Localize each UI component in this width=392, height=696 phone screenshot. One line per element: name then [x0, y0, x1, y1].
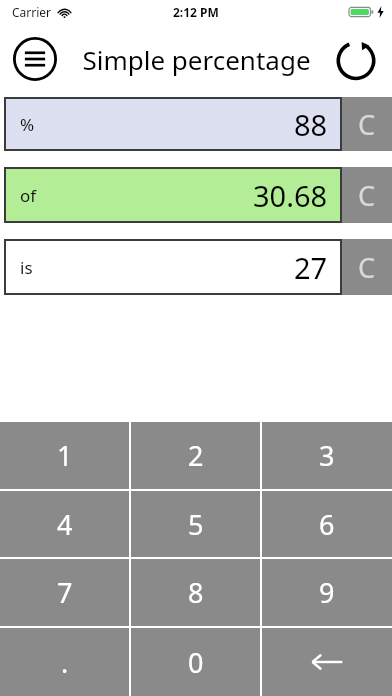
button[interactable]: of [4, 167, 342, 223]
button[interactable]: 5 [131, 491, 260, 557]
button[interactable]: . [0, 628, 129, 696]
staticText: 9 [319, 574, 335, 611]
staticText: % [20, 113, 35, 136]
button[interactable]: Backspace [262, 628, 392, 696]
button[interactable]: C [342, 239, 392, 295]
button[interactable]: Menu [11, 35, 59, 83]
staticText: 1 [57, 437, 73, 474]
button[interactable]: C [342, 167, 392, 223]
button[interactable]: 7 [0, 559, 129, 626]
staticText: is [20, 256, 33, 279]
button[interactable]: Reset [332, 35, 380, 83]
button[interactable]: 6 [262, 491, 392, 557]
staticText: Simple percentage [82, 42, 311, 77]
button[interactable]: % [4, 97, 342, 151]
button[interactable]: C [342, 97, 392, 151]
button[interactable]: 8 [131, 559, 260, 626]
staticText: 2 [188, 437, 204, 474]
button[interactable]: 4 [0, 491, 129, 557]
staticText: 4 [57, 506, 73, 543]
staticText: Carrier [12, 4, 52, 20]
staticText: C [358, 106, 376, 143]
button[interactable]: 0 [131, 628, 260, 696]
staticText: 3 [319, 437, 335, 474]
staticText: 88 [294, 105, 328, 144]
staticText: 5 [188, 506, 204, 543]
button[interactable]: is [4, 239, 342, 295]
staticText: . [61, 644, 69, 681]
staticText: 8 [188, 574, 204, 611]
button[interactable]: 3 [262, 422, 392, 489]
button[interactable]: 2 [131, 422, 260, 489]
staticText: 2:12 PM [173, 4, 219, 20]
button[interactable]: 9 [262, 559, 392, 626]
staticText: of [20, 184, 37, 207]
staticText: C [358, 249, 376, 286]
staticText: 30.68 [253, 176, 328, 215]
staticText: C [358, 177, 376, 214]
staticText: 27 [294, 248, 328, 287]
staticText: 7 [57, 574, 73, 611]
staticText: 0 [188, 644, 204, 681]
staticText: 6 [319, 506, 335, 543]
button[interactable]: 1 [0, 422, 129, 489]
